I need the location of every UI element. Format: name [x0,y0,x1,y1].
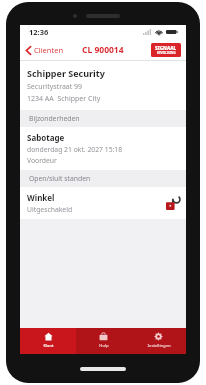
staticText: Sabotage [27,132,65,143]
staticText: SIGNAAL [155,45,177,51]
staticText: Uitgeschakeld [27,205,73,214]
button[interactable]: Hulp [76,328,131,354]
staticText: donderdag 21 okt. 2027 15:18 [27,145,123,154]
button[interactable]: Schipper Security [20,61,186,110]
button[interactable]: Clienten [20,42,70,58]
staticText: BEVEILIGING [157,51,176,55]
button[interactable]: Instellingen [131,328,186,354]
staticText: Instellingen [147,343,171,349]
staticText: Winkel [27,192,55,203]
staticText: 12:36 [29,27,49,37]
button[interactable]: Klant [20,328,76,354]
staticText: Schipper Security [27,67,105,79]
staticText: Hulp [99,343,109,349]
button[interactable]: Winkel [20,187,186,219]
staticText: Open/sluit standen [29,174,91,183]
staticText: Voordeur [27,156,57,165]
staticText: Securitystraat 99 [27,82,83,92]
button[interactable]: Sabotage [20,127,186,170]
staticText: Bijzonderheden [29,114,80,123]
staticText: CL 900014 [82,44,124,56]
staticText: Klant [43,343,54,349]
button[interactable]: Signaal Beveiliging logo [151,43,181,57]
other: Uitgeschakeld - slot open [166,196,179,210]
staticText: Clienten [34,45,64,55]
staticText: 1234 AA Schipper City [27,94,101,104]
